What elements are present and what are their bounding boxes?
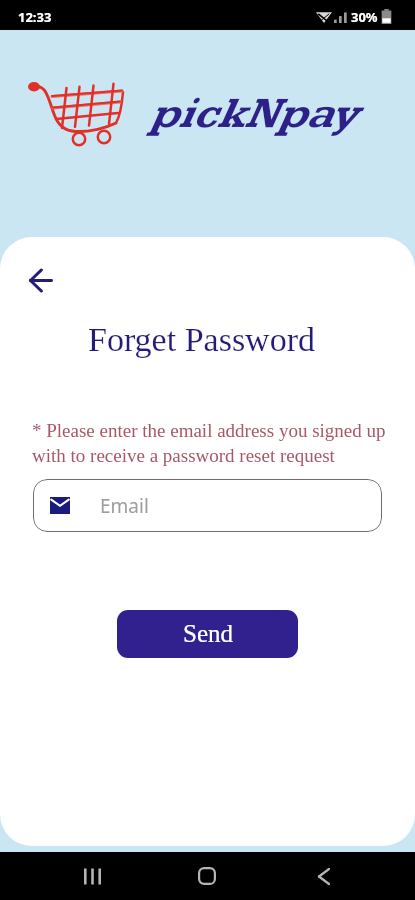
- staticText: 12:33: [18, 8, 52, 26]
- button[interactable]: Send: [117, 610, 298, 658]
- button[interactable]: Home: [177, 852, 237, 900]
- staticText: Send: [183, 620, 233, 648]
- button[interactable]: Email: [33, 479, 382, 532]
- staticText: pickNpay: [149, 88, 355, 140]
- button[interactable]: Back: [17, 258, 65, 302]
- staticText: Email: [100, 493, 149, 519]
- button[interactable]: Recent apps: [62, 852, 122, 900]
- staticText: 30%: [351, 8, 378, 26]
- staticText: * Please enter the email address you sig…: [32, 420, 386, 466]
- staticText: Forget Password: [0, 321, 409, 359]
- button[interactable]: Back: [294, 852, 354, 900]
